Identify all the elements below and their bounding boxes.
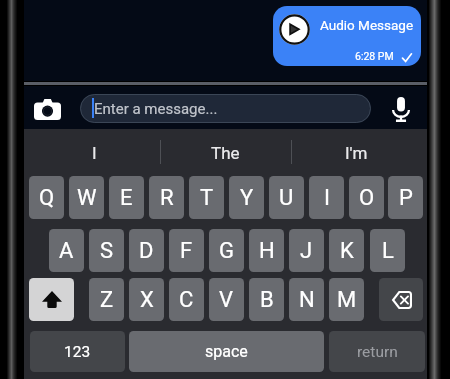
staticText: I bbox=[324, 185, 330, 211]
button[interactable]: O bbox=[349, 176, 384, 219]
staticText: V bbox=[219, 287, 234, 313]
staticText: G bbox=[219, 238, 234, 264]
staticText: The bbox=[211, 143, 240, 163]
button[interactable]: The bbox=[160, 129, 291, 176]
button[interactable]: C bbox=[169, 278, 204, 321]
staticText: Audio Message bbox=[320, 17, 414, 33]
button[interactable]: space bbox=[129, 331, 324, 372]
button[interactable]: W bbox=[69, 176, 104, 219]
staticText: K bbox=[340, 238, 354, 264]
staticText: S bbox=[100, 238, 114, 264]
button[interactable]: return bbox=[329, 331, 425, 372]
button[interactable]: V bbox=[209, 278, 244, 321]
staticText: 123 bbox=[64, 343, 91, 361]
staticText: A bbox=[59, 238, 74, 264]
button[interactable]: Z bbox=[89, 278, 124, 321]
button[interactable]: Backspace bbox=[379, 278, 423, 321]
button[interactable]: F bbox=[169, 229, 204, 272]
button[interactable]: Record voice message bbox=[382, 90, 420, 128]
staticText: T bbox=[200, 185, 214, 211]
staticText: C bbox=[179, 287, 194, 313]
staticText: R bbox=[160, 185, 174, 211]
staticText: M bbox=[337, 287, 357, 313]
staticText: Q bbox=[39, 185, 55, 211]
button[interactable]: K bbox=[329, 229, 364, 272]
staticText: Y bbox=[240, 185, 254, 211]
button[interactable]: J bbox=[289, 229, 324, 272]
button[interactable]: B bbox=[249, 278, 284, 321]
button[interactable]: A bbox=[49, 229, 84, 272]
button[interactable]: I bbox=[309, 176, 344, 219]
button[interactable]: Enter a message... bbox=[80, 94, 371, 123]
staticText: D bbox=[139, 238, 154, 264]
button[interactable]: D bbox=[129, 229, 164, 272]
button[interactable]: Y bbox=[229, 176, 264, 219]
staticText: return bbox=[357, 343, 398, 361]
staticText: N bbox=[299, 287, 315, 313]
button[interactable]: H bbox=[249, 229, 284, 272]
staticText: L bbox=[382, 238, 394, 264]
staticText: 6:28 PM bbox=[355, 50, 394, 62]
button[interactable]: Audio Message bbox=[273, 6, 421, 66]
staticText: P bbox=[399, 185, 413, 211]
button[interactable]: X bbox=[129, 278, 164, 321]
staticText: O bbox=[359, 185, 375, 211]
staticText: H bbox=[259, 238, 275, 264]
staticText: Enter a message... bbox=[94, 100, 218, 118]
button[interactable]: P bbox=[388, 176, 423, 219]
button[interactable]: 123 bbox=[30, 331, 125, 372]
button[interactable]: N bbox=[289, 278, 324, 321]
staticText: F bbox=[180, 238, 193, 264]
staticText: Z bbox=[100, 287, 114, 313]
button[interactable]: L bbox=[370, 229, 405, 272]
staticText: I bbox=[92, 143, 97, 163]
button[interactable]: U bbox=[269, 176, 304, 219]
staticText: E bbox=[120, 185, 133, 211]
button[interactable]: Shift bbox=[29, 278, 74, 321]
staticText: I'm bbox=[345, 143, 368, 163]
button[interactable]: I'm bbox=[291, 129, 422, 176]
staticText: U bbox=[279, 185, 294, 211]
staticText: J bbox=[300, 238, 313, 264]
button[interactable]: T bbox=[189, 176, 224, 219]
button[interactable]: S bbox=[89, 229, 124, 272]
button[interactable]: R bbox=[149, 176, 184, 219]
button[interactable]: I bbox=[29, 129, 160, 176]
staticText: X bbox=[140, 287, 154, 313]
staticText: space bbox=[205, 342, 248, 361]
button[interactable]: G bbox=[209, 229, 244, 272]
button[interactable]: M bbox=[329, 278, 364, 321]
staticText: B bbox=[260, 287, 274, 313]
button[interactable]: E bbox=[109, 176, 144, 219]
staticText: W bbox=[77, 185, 97, 211]
button[interactable]: Q bbox=[29, 176, 64, 219]
button[interactable]: Camera bbox=[28, 90, 66, 128]
